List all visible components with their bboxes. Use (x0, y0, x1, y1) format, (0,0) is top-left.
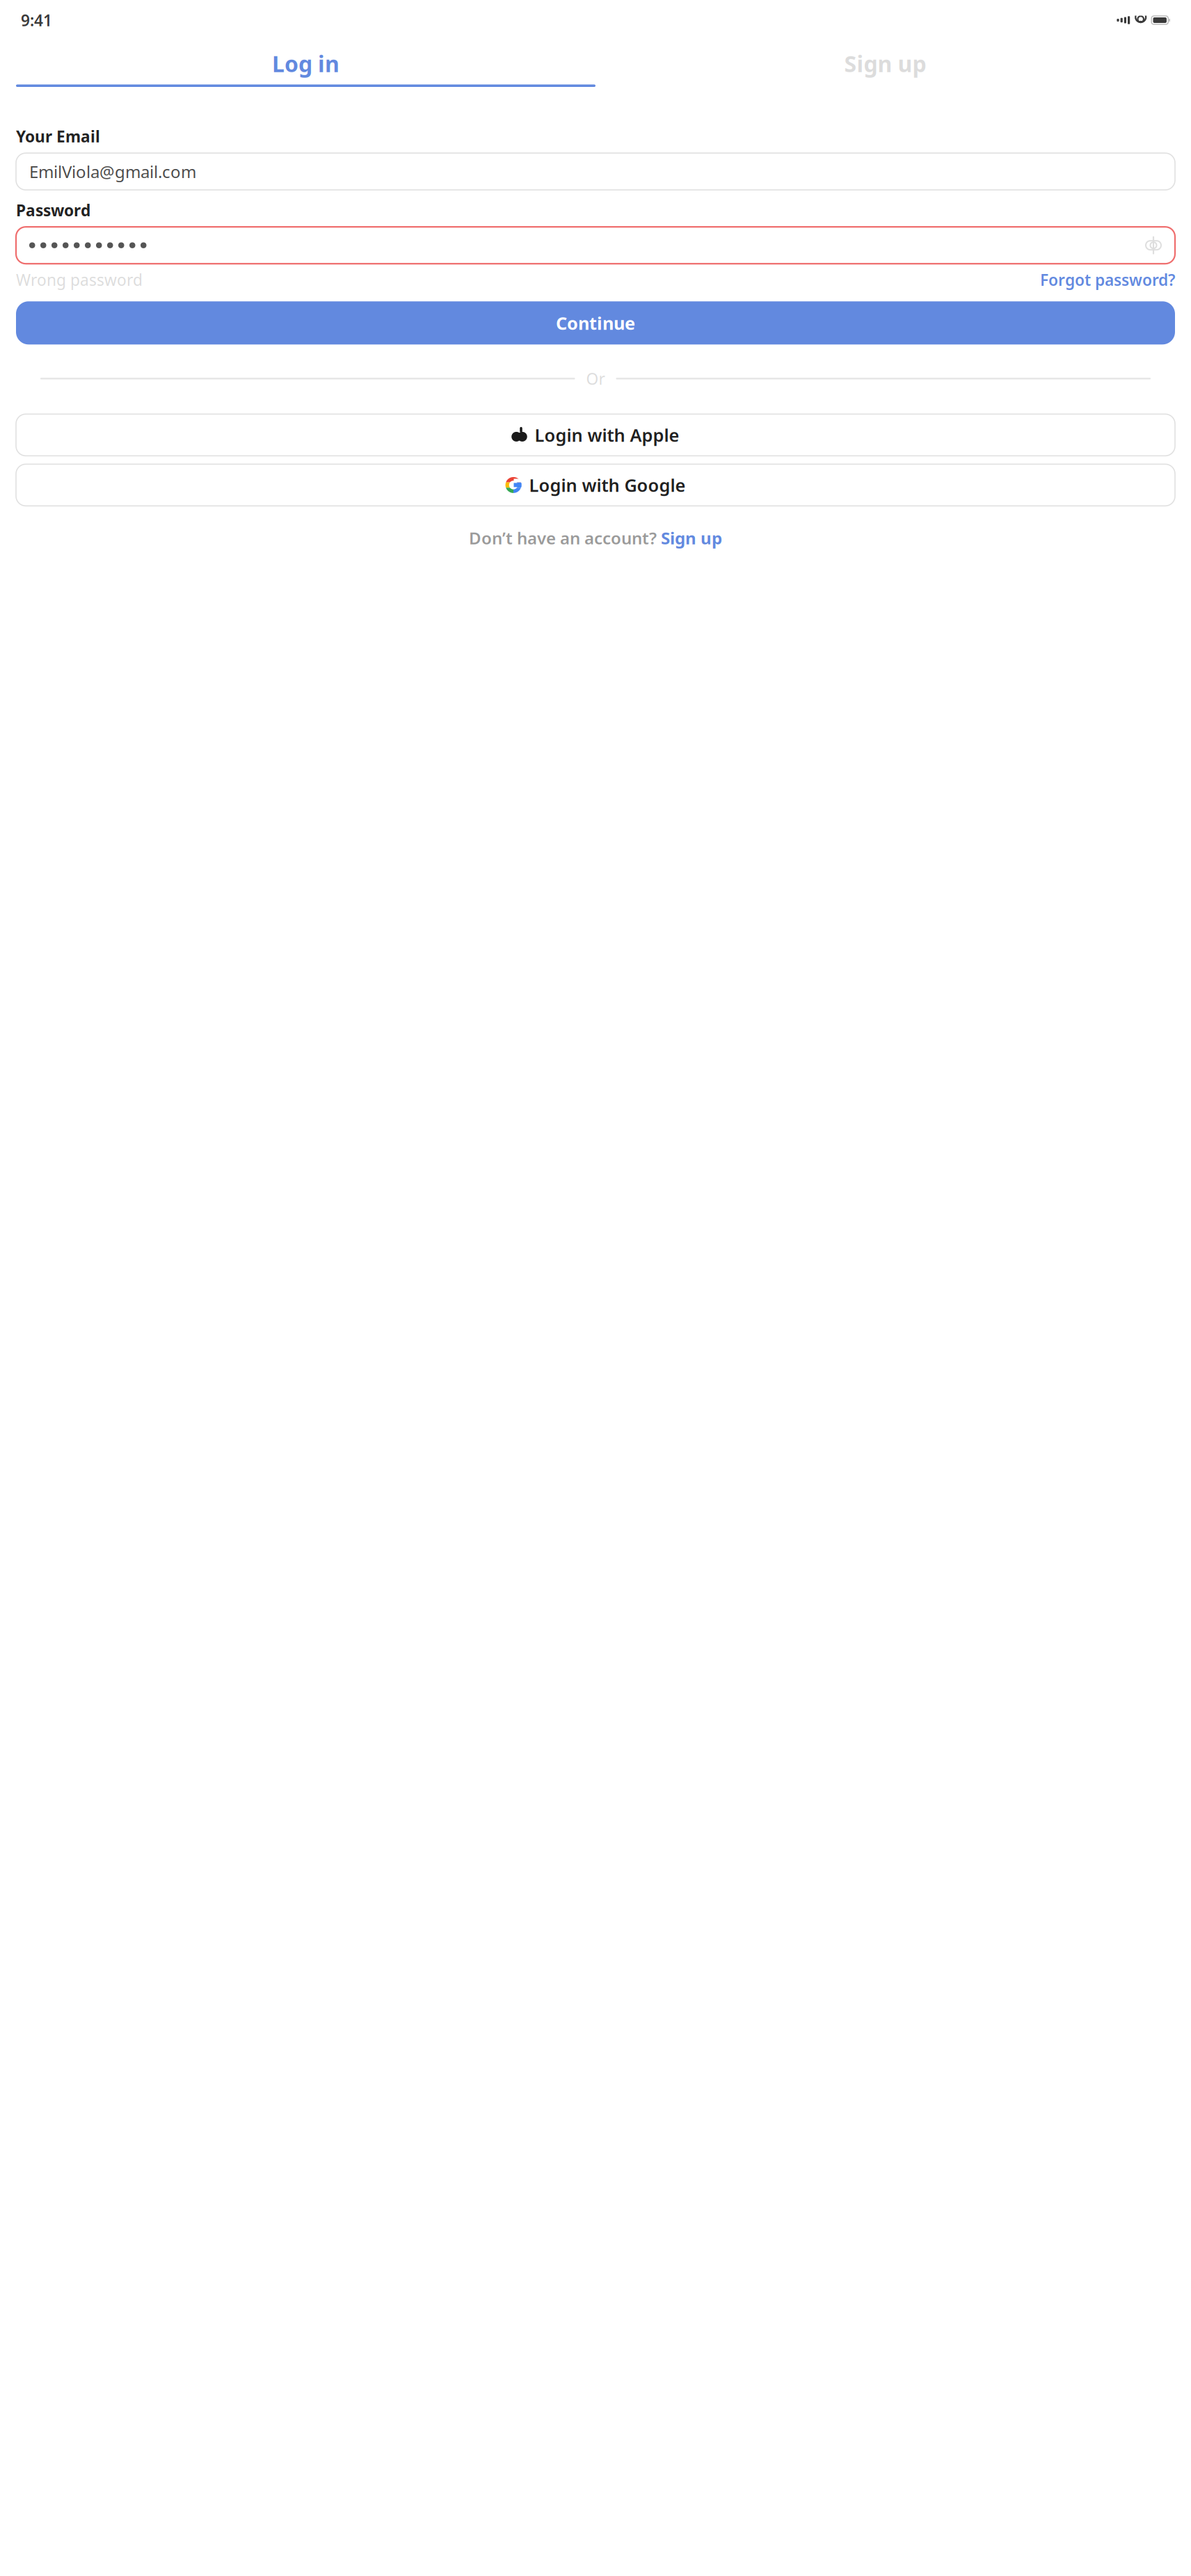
staticText: Sign up (661, 527, 722, 549)
button[interactable] (16, 227, 1175, 264)
button[interactable]: Forgot password? (1040, 269, 1175, 290)
button[interactable]: Sign up (595, 49, 1175, 87)
staticText: Log in (272, 49, 339, 78)
button[interactable]: Login with Google (16, 464, 1175, 506)
staticText: Forgot password? (1040, 269, 1175, 290)
staticText: EmilViola@gmail.com (29, 160, 196, 183)
staticText: Wrong password (16, 269, 143, 290)
staticText: Login with Google (529, 473, 686, 497)
staticText: Continue (556, 311, 635, 335)
button[interactable]: Login with Apple (16, 414, 1175, 456)
button[interactable]: Continue (16, 301, 1175, 344)
staticText: Or (586, 368, 605, 389)
button[interactable]: Don’t have an account? (16, 527, 1175, 549)
staticText: Password (16, 200, 90, 221)
button[interactable]: EmilViola@gmail.com (16, 153, 1175, 190)
staticText: Your Email (16, 126, 100, 147)
staticText: 9:41 (21, 10, 52, 31)
staticText: Login with Apple (535, 423, 679, 447)
button[interactable]: Log in (16, 49, 595, 87)
staticText: Sign up (844, 49, 926, 78)
staticText: Don’t have an account? (469, 527, 657, 549)
